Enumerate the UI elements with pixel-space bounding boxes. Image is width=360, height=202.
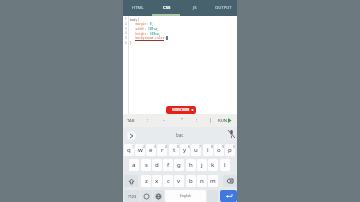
button[interactable]: s <box>141 159 151 171</box>
staticText: e <box>149 146 153 154</box>
staticText: } <box>130 41 132 45</box>
button[interactable]: OUTPUT <box>209 0 238 16</box>
button[interactable]: SUBSCRIBE <box>166 106 196 114</box>
button[interactable]: ?123 <box>124 190 140 202</box>
staticText: j <box>201 161 203 169</box>
button[interactable]: : <box>194 114 200 127</box>
button[interactable]: n <box>197 175 207 187</box>
staticText: c <box>167 177 170 185</box>
staticText: a <box>132 161 136 169</box>
staticText: 0 <box>233 144 235 149</box>
button[interactable] <box>228 130 235 138</box>
button[interactable]: JS <box>180 0 209 16</box>
staticText: 7 <box>199 144 201 149</box>
button[interactable]: t <box>169 144 179 156</box>
button[interactable] <box>216 114 237 127</box>
staticText: r <box>161 146 164 154</box>
staticText: - <box>163 117 165 124</box>
staticText: 5 <box>177 144 179 149</box>
staticText: 8 <box>211 144 213 149</box>
staticText: i <box>207 146 209 154</box>
staticText: k <box>211 161 215 169</box>
staticText: 4 <box>165 144 167 149</box>
staticText: v <box>177 177 181 185</box>
staticText: q <box>127 146 131 154</box>
staticText: bac <box>176 132 184 138</box>
staticText: 5 <box>125 36 127 40</box>
staticText: SUBSCRIBE <box>172 108 190 112</box>
button[interactable]: z <box>141 175 151 187</box>
staticText: s <box>145 161 148 169</box>
staticText: 2 <box>125 22 127 26</box>
staticText: English <box>180 194 192 198</box>
button[interactable]: i <box>203 144 213 156</box>
staticText: l <box>224 161 226 169</box>
staticText: t <box>173 146 176 154</box>
staticText: " <box>181 117 184 124</box>
button[interactable]: d <box>152 159 162 171</box>
staticText: body{ <box>130 18 140 22</box>
button[interactable]: l <box>220 159 230 171</box>
button[interactable]: o <box>214 144 224 156</box>
staticText: h <box>189 161 193 169</box>
staticText: background-color: <box>130 36 167 40</box>
staticText: 2 <box>143 144 145 149</box>
staticText: z <box>145 177 148 185</box>
button[interactable] <box>220 190 237 202</box>
button[interactable]: q <box>124 144 134 156</box>
staticText: w <box>138 146 143 154</box>
staticText: OUTPUT <box>215 5 232 11</box>
button[interactable]: e <box>146 144 156 156</box>
button[interactable]: g <box>174 159 184 171</box>
button[interactable]: h <box>186 159 196 171</box>
staticText: 3 <box>125 27 127 31</box>
button[interactable]: : <box>145 114 151 127</box>
staticText: x <box>155 177 159 185</box>
button[interactable]: y <box>180 144 190 156</box>
staticText: margin: 0; <box>130 22 154 26</box>
button[interactable]: " <box>179 114 185 127</box>
button[interactable]: | <box>207 114 213 127</box>
button[interactable]: r <box>157 144 167 156</box>
button[interactable] <box>127 131 136 140</box>
staticText: 6 <box>188 144 190 149</box>
button[interactable]: m <box>208 175 218 187</box>
staticText: 9 <box>222 144 224 149</box>
staticText: height: 100vw; <box>130 32 161 36</box>
button[interactable]: x <box>152 175 162 187</box>
staticText: width: 100vw; <box>130 27 159 31</box>
staticText: g <box>177 161 181 169</box>
button[interactable] <box>141 190 152 202</box>
button[interactable]: u <box>191 144 201 156</box>
staticText: HTML <box>132 5 144 11</box>
button[interactable]: English <box>165 190 206 202</box>
staticText: JS <box>193 5 197 11</box>
button[interactable]: v <box>174 175 184 187</box>
button[interactable]: p <box>225 144 235 156</box>
button[interactable]: - <box>161 114 167 127</box>
staticText: CSS <box>163 5 171 11</box>
staticText: o <box>217 146 221 154</box>
button[interactable] <box>153 190 164 202</box>
button[interactable]: TAB <box>125 114 137 127</box>
staticText: 3 <box>154 144 156 149</box>
button[interactable]: j <box>197 159 207 171</box>
button[interactable]: HTML <box>123 0 152 16</box>
button[interactable]: c <box>163 175 173 187</box>
staticText: 1 <box>125 17 127 21</box>
button[interactable]: a <box>129 159 139 171</box>
staticText: : <box>196 117 198 124</box>
staticText: TAB <box>127 118 135 124</box>
button[interactable]: w <box>135 144 145 156</box>
staticText: 6 <box>125 41 127 45</box>
staticText: u <box>194 146 198 154</box>
staticText: y <box>183 146 187 154</box>
button[interactable]: b <box>186 175 196 187</box>
button[interactable] <box>223 175 237 187</box>
button[interactable]: CSS <box>152 0 181 16</box>
button[interactable]: f <box>163 159 173 171</box>
button[interactable] <box>124 175 138 187</box>
button[interactable]: k <box>208 159 218 171</box>
button[interactable]: bac <box>171 127 189 142</box>
